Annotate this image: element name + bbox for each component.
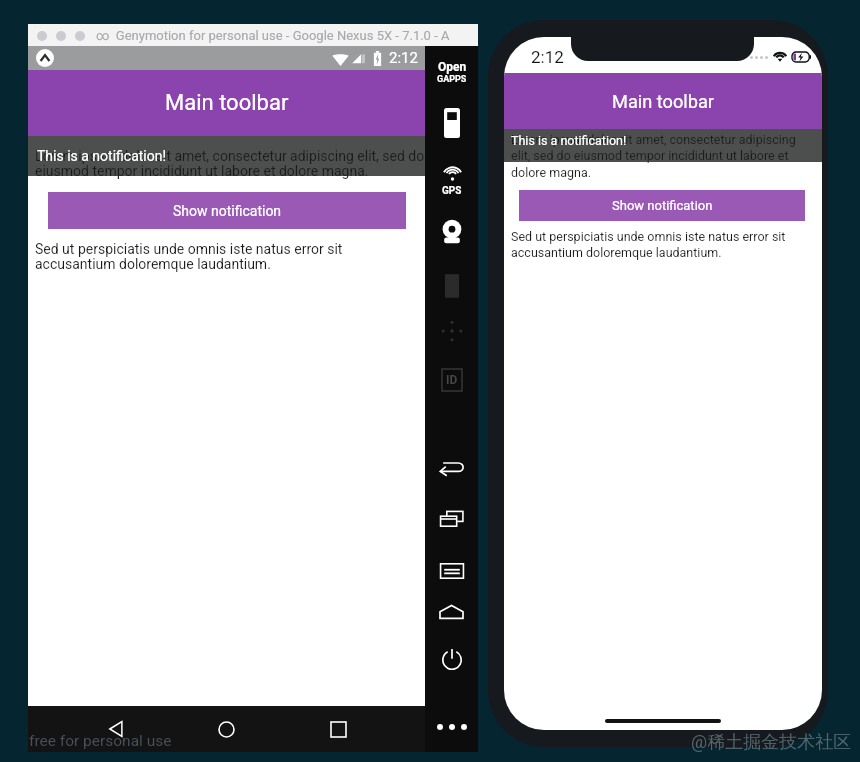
staticText: Show notification xyxy=(612,198,713,213)
button[interactable]: Show notification xyxy=(48,192,406,229)
staticText: This is a notification! xyxy=(511,133,627,148)
button[interactable]: Home xyxy=(431,595,472,629)
staticText: Main toolbar xyxy=(612,91,714,112)
button[interactable]: More options xyxy=(431,710,472,744)
staticText: @稀土掘金技术社区 xyxy=(691,731,852,754)
staticText: GPS xyxy=(442,185,462,197)
button[interactable]: Back xyxy=(96,709,136,749)
button[interactable]: Home xyxy=(206,709,246,749)
staticText: Show notification xyxy=(173,203,282,219)
button[interactable]: Identifiers xyxy=(431,363,472,397)
staticText: GAPPS xyxy=(437,74,467,85)
staticText: Lorem ipsum dolor sit amet, consectetur … xyxy=(511,132,811,181)
staticText: Sed ut perspiciatis unde omnis iste natu… xyxy=(511,229,811,261)
button[interactable]: Rotate xyxy=(431,314,472,348)
staticText: ∞ Genymotion for personal use - Google N… xyxy=(96,28,450,43)
button[interactable]: Menu xyxy=(431,554,472,588)
staticText: 2:12 xyxy=(531,47,564,67)
button[interactable]: GPS xyxy=(431,164,472,198)
button[interactable]: Recent apps xyxy=(318,709,358,749)
staticText: 2:12 xyxy=(389,49,418,67)
button[interactable]: Show notification xyxy=(519,190,805,221)
button[interactable]: Back xyxy=(431,450,472,484)
staticText: free for personal use xyxy=(29,732,172,750)
staticText: ID xyxy=(446,373,458,387)
button[interactable]: Recent apps xyxy=(431,502,472,536)
staticText: Sed ut perspiciatis unde omnis iste natu… xyxy=(35,241,427,273)
button[interactable]: Open GAPPS xyxy=(431,55,472,89)
staticText: This is a notification! xyxy=(37,148,167,164)
staticText: Open xyxy=(438,60,467,74)
button[interactable]: Power xyxy=(431,643,472,677)
button[interactable]: Camera xyxy=(431,215,472,249)
button[interactable]: Disk IO xyxy=(431,269,472,303)
staticText: Lorem ipsum dolor sit amet, consectetur … xyxy=(35,148,427,179)
button[interactable]: Phone xyxy=(431,106,472,140)
staticText: Main toolbar xyxy=(165,90,289,116)
